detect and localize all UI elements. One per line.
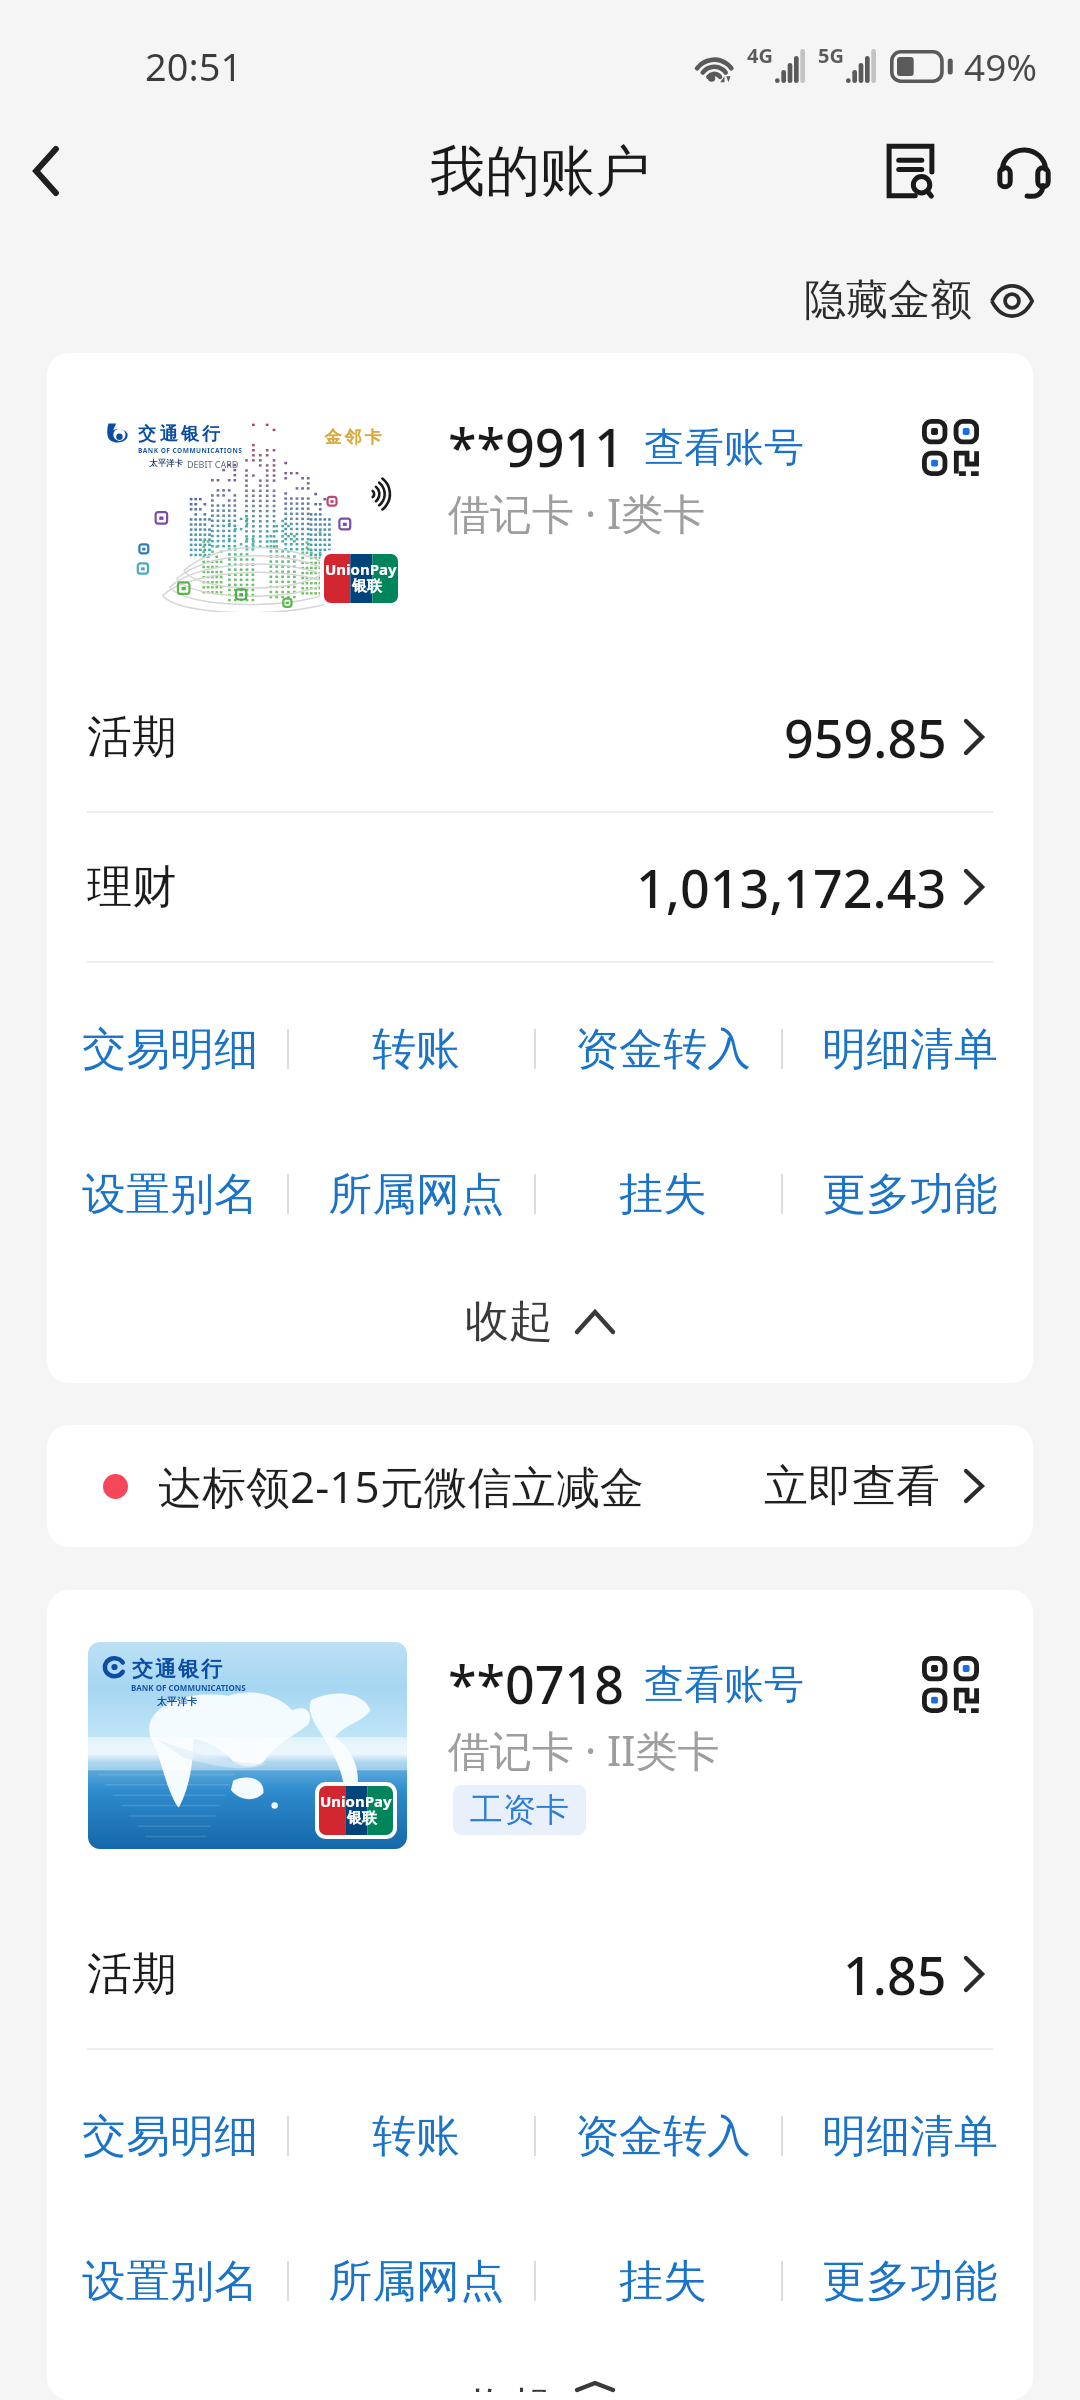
staticText: 交易明细 [82,2109,258,2164]
button[interactable]: 明细清单 [786,2108,1033,2164]
button[interactable]: 达标领2-15元微信立减金 [47,1425,1033,1547]
staticText: 收起 [465,2381,553,2392]
staticText: 工资卡 [470,1789,569,1831]
staticText: 明细清单 [822,1022,998,1077]
staticText: UnionPay [325,559,397,579]
staticText: 交通银行 [138,423,224,446]
button[interactable]: Customer service [978,125,1070,217]
button[interactable]: 转账 [293,2108,539,2164]
staticText: 设置别名 [82,2254,258,2309]
staticText: BANK OF COMMUNICATIONS [138,446,243,455]
staticText: 挂失 [619,2254,707,2309]
staticText: 20:51 [145,40,243,92]
staticText: 借记卡 · I类卡 [448,484,706,541]
staticText: 4G [747,42,773,69]
staticText: UnionPay [320,1791,392,1811]
staticText: 1.85 [843,1939,947,2010]
staticText: 太平洋卡 [149,458,183,469]
staticText: 理财 [87,859,177,916]
button[interactable]: QR code [922,1656,979,1713]
staticText: 明细清单 [822,2109,998,2164]
staticText: 资金转入 [575,1022,751,1077]
staticText: 转账 [372,1022,460,1077]
button[interactable]: 隐藏金额 [784,264,1080,337]
staticText: 所属网点 [328,2254,504,2309]
button[interactable]: 明细清单 [786,1021,1033,1077]
staticText: **9911 [448,411,624,482]
button[interactable]: Search records [864,125,956,217]
button[interactable]: 更多功能 [786,2253,1033,2309]
staticText: 设置别名 [82,1167,258,1222]
button[interactable]: 理财 [47,813,1033,961]
staticText: 我的账户 [430,137,650,206]
staticText: 更多功能 [822,1167,998,1222]
staticText: 所属网点 [328,1167,504,1222]
staticText: 太平洋卡 [157,1695,197,1708]
staticText: 隐藏金额 [804,274,972,327]
staticText: 活期 [87,709,177,766]
staticText: DEBIT CARD [187,458,239,470]
button[interactable]: 资金转入 [539,1021,786,1077]
staticText: 收起 [465,1294,553,1349]
button[interactable]: 活期 [47,1900,1033,2048]
staticText: 交易明细 [82,1022,258,1077]
staticText: 转账 [372,2109,460,2164]
staticText: 银联 [347,1809,377,1828]
staticText: 挂失 [619,1167,707,1222]
button[interactable]: 所属网点 [293,2253,539,2309]
staticText: 资金转入 [575,2109,751,2164]
button[interactable]: 收起 [441,2373,639,2400]
staticText: 更多功能 [822,2254,998,2309]
staticText: 银联 [352,577,382,596]
staticText: 活期 [87,1946,177,2003]
button[interactable]: 更多功能 [786,1166,1033,1222]
button[interactable]: 转账 [293,1021,539,1077]
staticText: BANK OF COMMUNICATIONS [131,1682,246,1693]
button[interactable]: 查看账号 [644,1659,804,1709]
button[interactable]: 资金转入 [539,2108,786,2164]
staticText: 达标领2-15元微信立减金 [158,1456,644,1516]
button[interactable]: 挂失 [539,1166,786,1222]
button[interactable]: 活期 [47,663,1033,811]
button[interactable]: 挂失 [539,2253,786,2309]
button[interactable]: QR code [922,419,979,476]
staticText: 959.85 [784,702,947,773]
staticText: 5G [818,42,844,69]
button[interactable]: 交易明细 [47,1021,293,1077]
staticText: **0718 [448,1648,624,1719]
button[interactable]: 收起 [441,1286,639,1357]
button[interactable]: Back [0,125,92,217]
staticText: 立即查看 [764,1459,940,1514]
button[interactable]: 交易明细 [47,2108,293,2164]
button[interactable]: 设置别名 [47,1166,293,1222]
button[interactable]: 设置别名 [47,2253,293,2309]
staticText: 金邻卡 [323,427,383,448]
staticText: 借记卡 · II类卡 [448,1721,720,1778]
staticText: 49% [964,41,1038,91]
button[interactable]: 查看账号 [644,422,804,472]
button[interactable]: 所属网点 [293,1166,539,1222]
staticText: 1,013,172.43 [636,852,947,923]
staticText: 交通银行 [131,1656,223,1682]
